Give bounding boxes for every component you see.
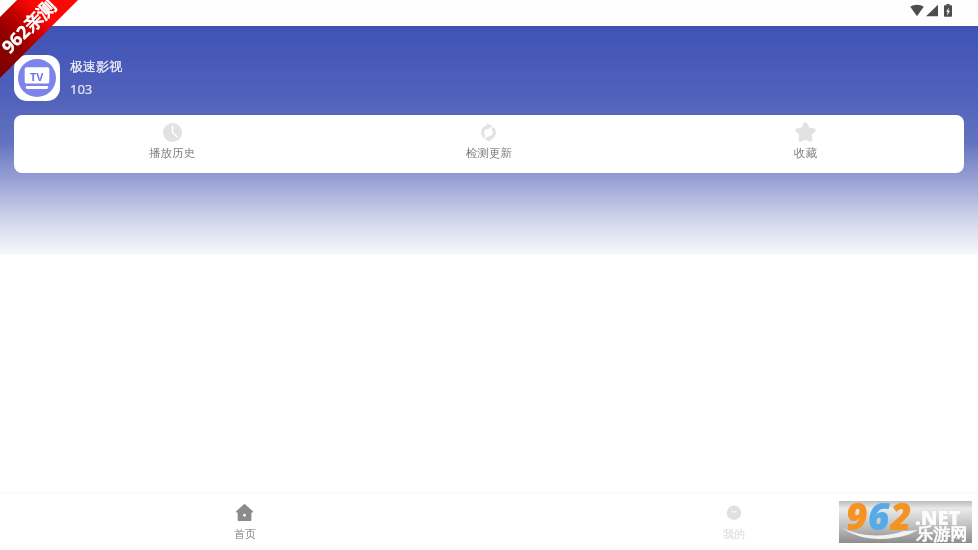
other: 极速影视 app icon [14, 55, 60, 101]
button[interactable]: 我的 [489, 494, 978, 550]
staticText: 103 [70, 80, 93, 98]
staticText: 我的 [723, 527, 745, 541]
staticText: 播放历史 [149, 146, 195, 160]
button[interactable]: 极速影视 app icon [0, 55, 978, 101]
staticText: 首页 [234, 527, 256, 541]
staticText: 极速影视 [70, 58, 122, 74]
staticText: 乐游网 [916, 524, 967, 545]
staticText: 962亲测 [0, 0, 61, 59]
staticText: 收藏 [794, 146, 817, 160]
staticText: 6 [868, 490, 890, 532]
button[interactable]: 收藏 [647, 115, 964, 173]
staticText: 2 [890, 490, 912, 532]
staticText: TV [30, 69, 44, 84]
staticText: 9 [846, 490, 868, 532]
button[interactable]: 首页 [0, 494, 489, 550]
button[interactable]: 播放历史 [14, 115, 330, 173]
button[interactable]: 检测更新 [330, 115, 647, 173]
staticText: 检测更新 [466, 146, 512, 160]
staticText: .NET [915, 504, 961, 531]
